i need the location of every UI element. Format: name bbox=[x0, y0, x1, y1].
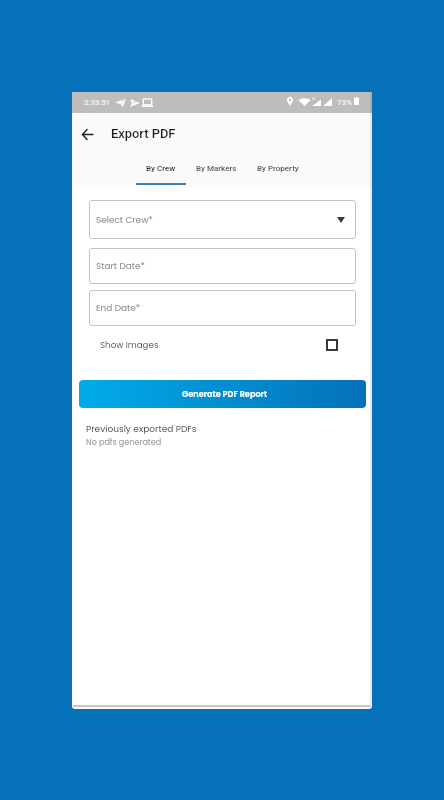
button[interactable]: Start Date* bbox=[89, 248, 356, 284]
staticText: Show Images bbox=[100, 339, 159, 351]
staticText: By Property bbox=[257, 164, 299, 173]
staticText: Generate PDF Report bbox=[182, 388, 268, 399]
staticText: By Crew bbox=[146, 164, 176, 173]
staticText: 2:33:51 bbox=[84, 98, 111, 107]
staticText: 73% bbox=[337, 98, 352, 107]
staticText: By Markers bbox=[196, 164, 237, 173]
staticText: Select Crew* bbox=[96, 214, 153, 226]
button[interactable]: Show Images checkbox bbox=[326, 339, 338, 351]
button[interactable]: Back bbox=[74, 121, 100, 147]
button[interactable]: By Crew bbox=[136, 160, 186, 187]
button[interactable]: Generate PDF Report bbox=[79, 380, 366, 408]
button[interactable]: Select Crew* bbox=[89, 200, 356, 239]
staticText: No pdfs generated bbox=[86, 437, 162, 448]
button[interactable]: End Date* bbox=[89, 290, 356, 326]
staticText: Export PDF bbox=[111, 126, 176, 141]
button[interactable]: By Property bbox=[247, 160, 309, 187]
button[interactable]: By Markers bbox=[186, 160, 247, 187]
staticText: End Date* bbox=[96, 302, 140, 314]
staticText: Previously exported PDFs bbox=[86, 423, 197, 436]
staticText: Start Date* bbox=[96, 260, 145, 272]
